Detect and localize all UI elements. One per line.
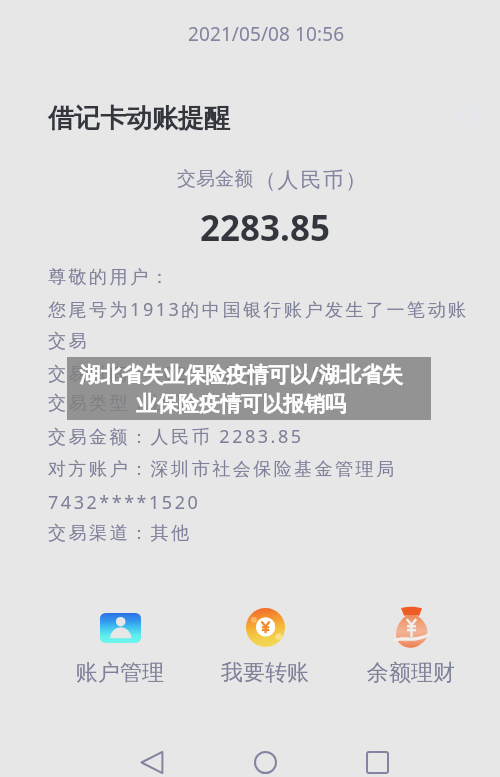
staticText: 交易渠道：其他 bbox=[48, 522, 192, 545]
staticText: 您尾号为1913的中国银行账户发生了一笔动账 bbox=[48, 297, 469, 322]
staticText: 交易时间：2021/05/08 10:56 bbox=[48, 361, 338, 386]
staticText: 2021/05/08 10:56 bbox=[188, 21, 345, 47]
staticText: 交易金额：人民币 2283.85 bbox=[48, 424, 304, 449]
staticText: 余额理财 bbox=[351, 659, 471, 687]
staticText: 7432****1520 bbox=[48, 490, 201, 515]
button[interactable] bbox=[205, 608, 325, 647]
button[interactable]: Back bbox=[128, 738, 176, 777]
staticText: 尊敬的用户： bbox=[48, 266, 172, 289]
staticText: 湖北省失业保险疫情可以/湖北省失业保险疫情可以报销吗 bbox=[79, 360, 403, 417]
staticText: 交易类型：社保 bbox=[48, 392, 192, 415]
staticText: 2283.85 bbox=[200, 204, 330, 252]
staticText: 我要转账 bbox=[205, 659, 325, 687]
button[interactable] bbox=[60, 613, 180, 643]
staticText: 账户管理 bbox=[60, 659, 180, 687]
button[interactable]: Recents bbox=[353, 738, 401, 777]
staticText: 交易金额 bbox=[177, 167, 253, 191]
staticText: 借记卡动账提醒 bbox=[48, 102, 230, 135]
button[interactable] bbox=[351, 607, 471, 648]
button[interactable]: Home bbox=[241, 738, 289, 777]
staticText: 对方账户：深圳市社会保险基金管理局 bbox=[48, 458, 397, 481]
staticText: （人民币） bbox=[255, 167, 368, 193]
staticText: 交易 bbox=[48, 330, 90, 353]
